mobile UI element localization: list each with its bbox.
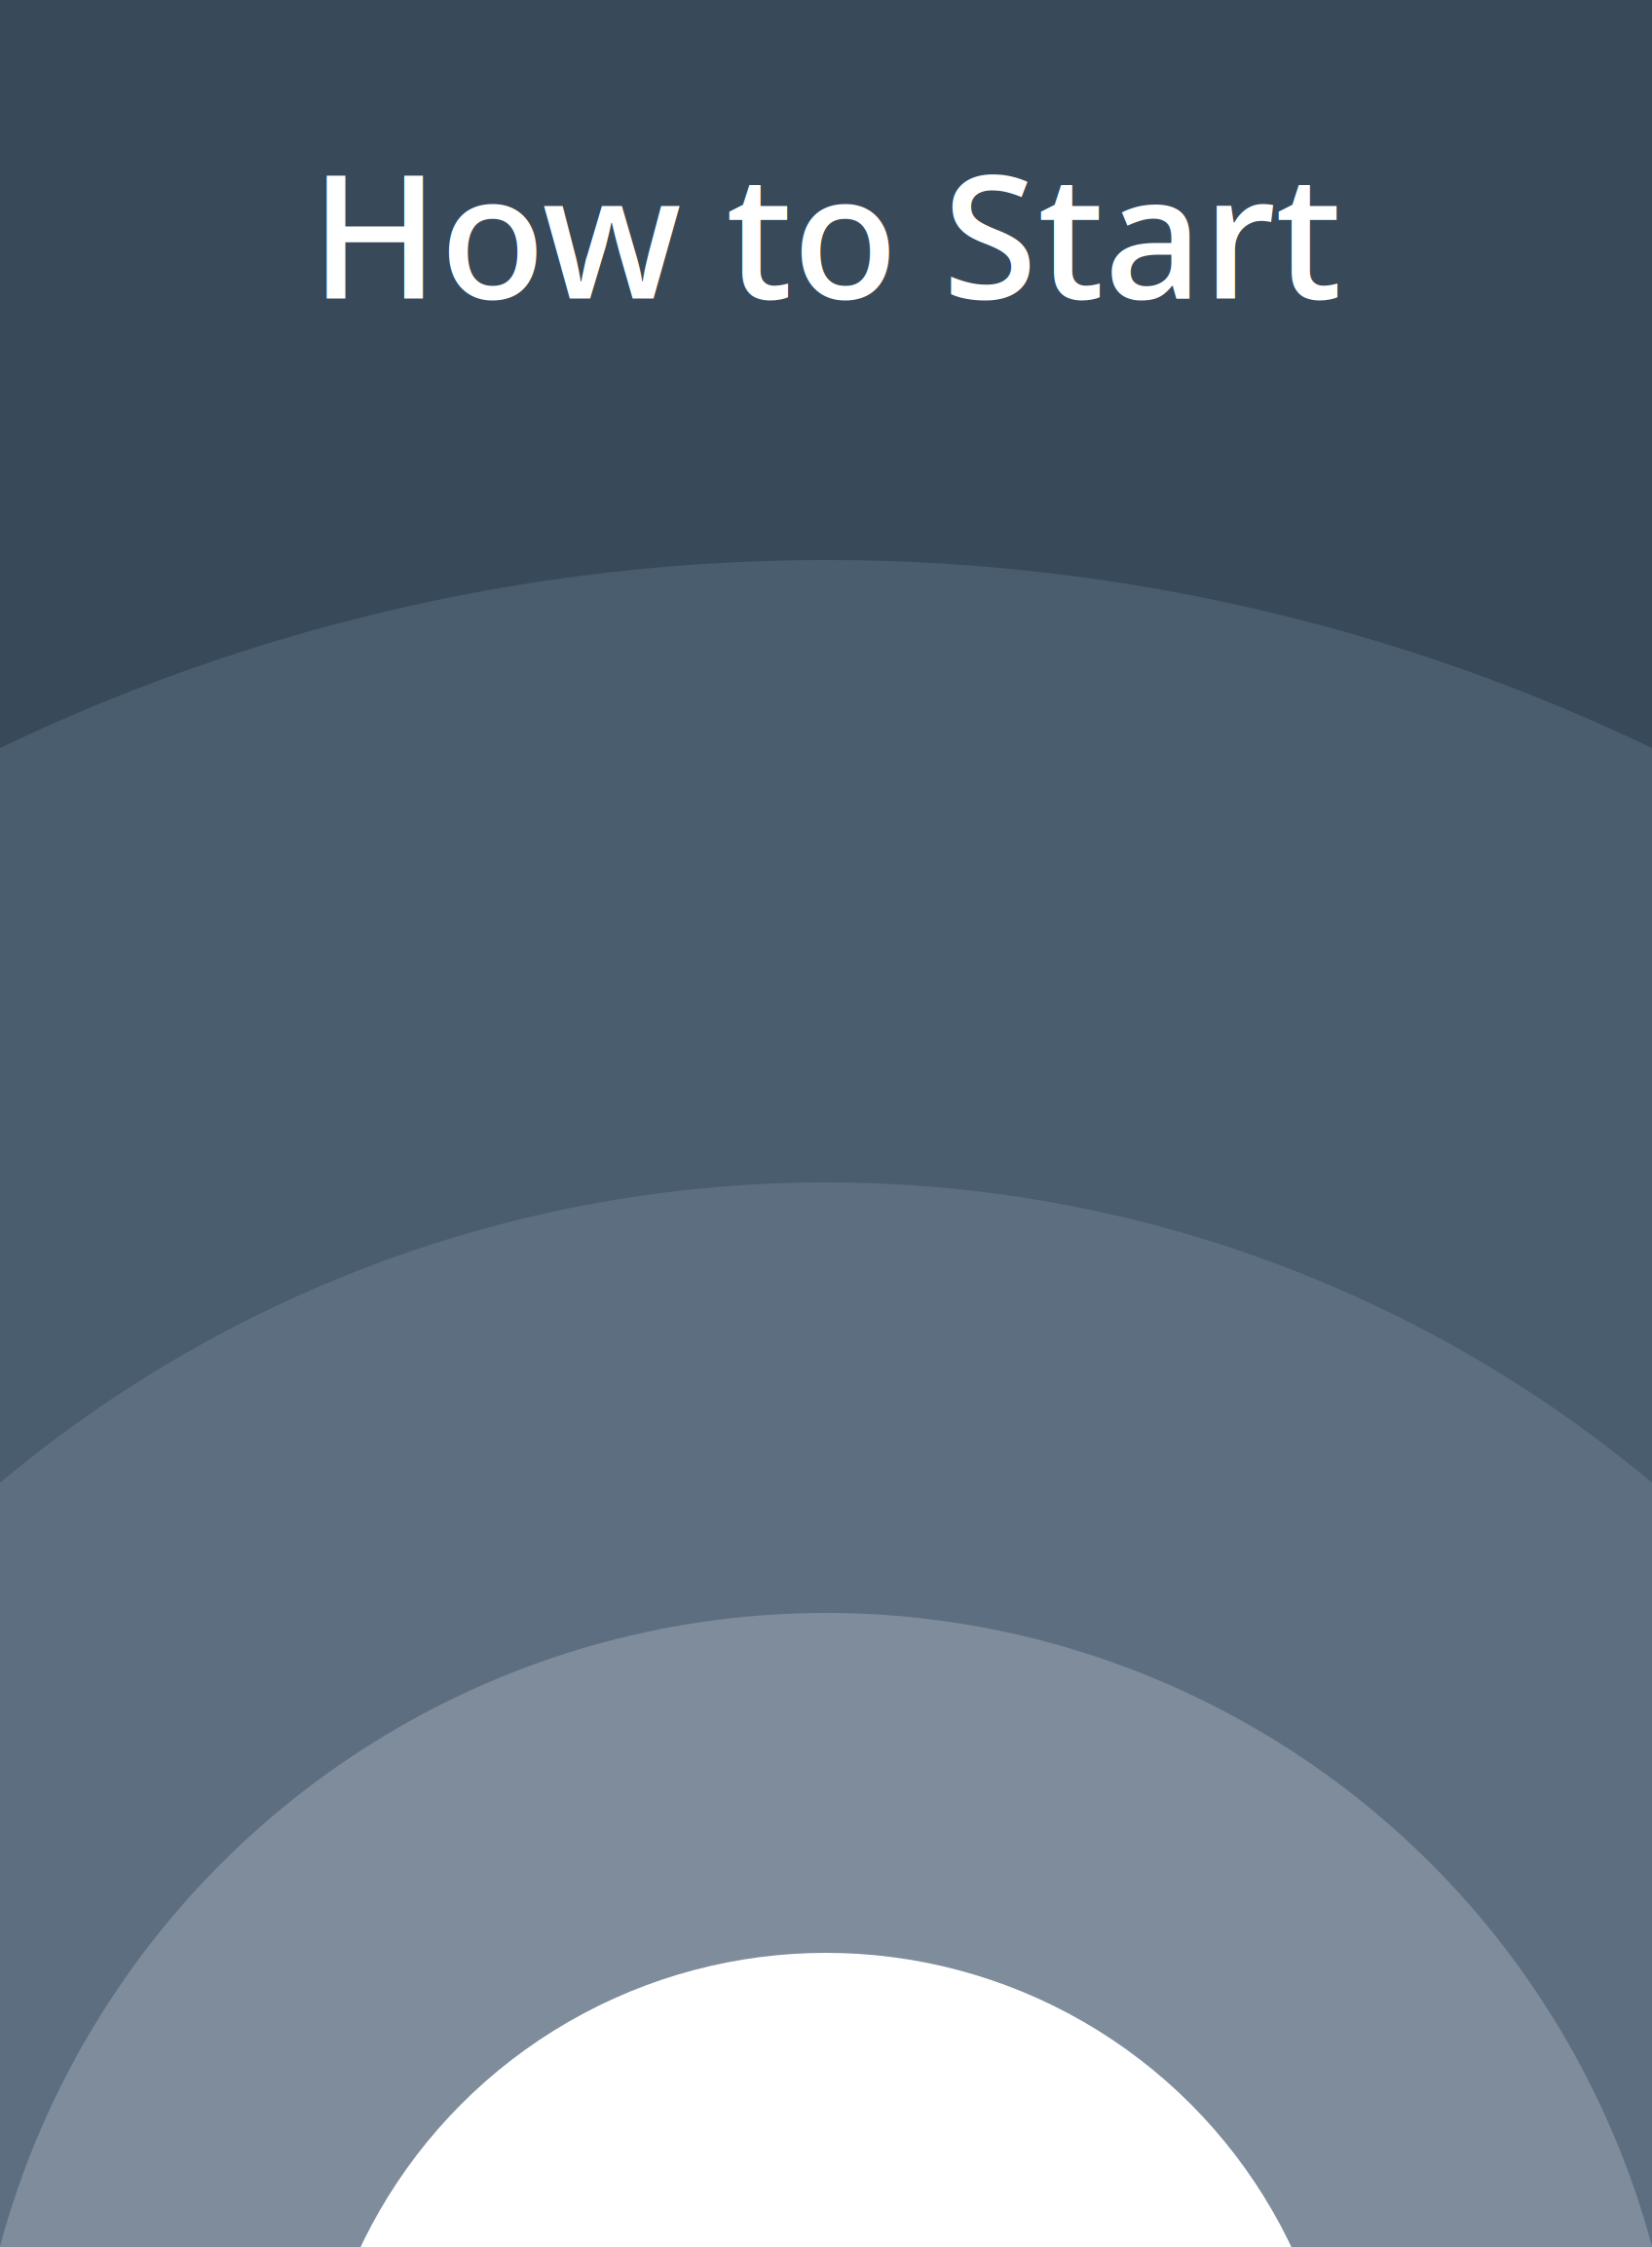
button[interactable]: Start xyxy=(0,0,1652,2247)
staticText: How to Start xyxy=(310,117,1342,346)
